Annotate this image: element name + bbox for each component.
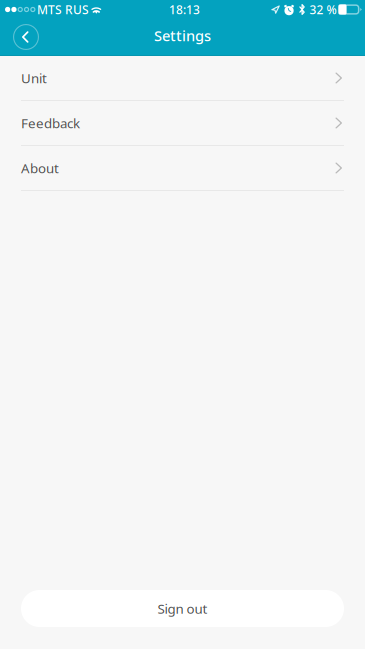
staticText: 32 %	[309, 1, 336, 17]
staticText: MTS RUS	[37, 1, 89, 17]
staticText: 18:13	[169, 1, 200, 17]
button[interactable]: Back	[8, 19, 44, 55]
button[interactable]: Unit	[0, 56, 365, 101]
staticText: Settings	[154, 26, 211, 45]
button[interactable]: Sign out	[21, 590, 344, 627]
button[interactable]: About	[0, 146, 365, 191]
staticText: Unit	[21, 69, 47, 87]
staticText: Feedback	[21, 114, 80, 132]
button[interactable]: Feedback	[0, 101, 365, 146]
staticText: About	[21, 159, 59, 177]
staticText: Sign out	[157, 600, 207, 617]
